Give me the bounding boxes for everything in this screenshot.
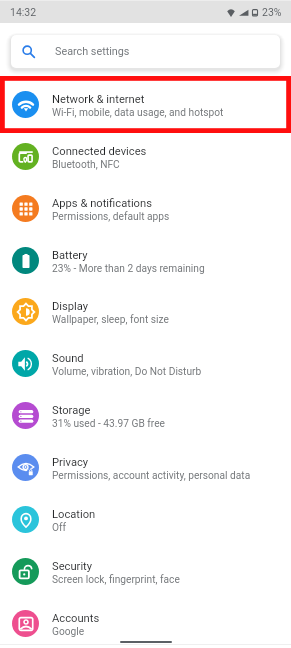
staticText: Google xyxy=(52,626,85,638)
staticText: Search settings xyxy=(55,45,130,58)
staticText: 23% - More than 2 days remaining xyxy=(52,263,205,275)
button[interactable]: Network & internet xyxy=(0,78,291,130)
staticText: Connected devices xyxy=(52,145,147,158)
staticText: Storage xyxy=(52,404,91,417)
staticText: 14:32 xyxy=(10,6,37,18)
button[interactable]: Display xyxy=(0,285,291,337)
button[interactable]: Accounts xyxy=(0,597,291,648)
staticText: Permissions, account activity, personal … xyxy=(52,470,251,482)
button[interactable]: Security xyxy=(0,545,291,597)
staticText: Wi-Fi, mobile, data usage, and hotspot xyxy=(52,107,224,119)
staticText: Accounts xyxy=(52,612,100,625)
staticText: Apps & notifications xyxy=(52,197,152,210)
button[interactable]: Connected devices xyxy=(0,130,291,182)
button[interactable]: Location xyxy=(0,493,291,545)
staticText: Display xyxy=(52,300,89,313)
button[interactable]: Sound xyxy=(0,337,291,389)
staticText: 23% xyxy=(262,6,282,18)
staticText: Battery xyxy=(52,249,88,262)
button[interactable]: Storage xyxy=(0,389,291,441)
button[interactable]: Battery xyxy=(0,234,291,286)
staticText: 31% used - 43.97 GB free xyxy=(52,418,165,430)
button[interactable]: Search settings xyxy=(11,35,280,68)
staticText: Network & internet xyxy=(52,93,145,106)
staticText: Bluetooth, NFC xyxy=(52,159,120,171)
staticText: Sound xyxy=(52,352,84,365)
staticText: Wallpaper, sleep, font size xyxy=(52,314,169,326)
staticText: Screen lock, fingerprint, face xyxy=(52,574,180,586)
staticText: Off xyxy=(52,522,67,534)
staticText: Location xyxy=(52,508,96,521)
staticText: Security xyxy=(52,560,93,573)
staticText: Privacy xyxy=(52,456,89,469)
staticText: Permissions, default apps xyxy=(52,211,170,223)
button[interactable]: Apps & notifications xyxy=(0,182,291,234)
button[interactable]: Privacy xyxy=(0,441,291,493)
staticText: Volume, vibration, Do Not Disturb xyxy=(52,366,202,378)
